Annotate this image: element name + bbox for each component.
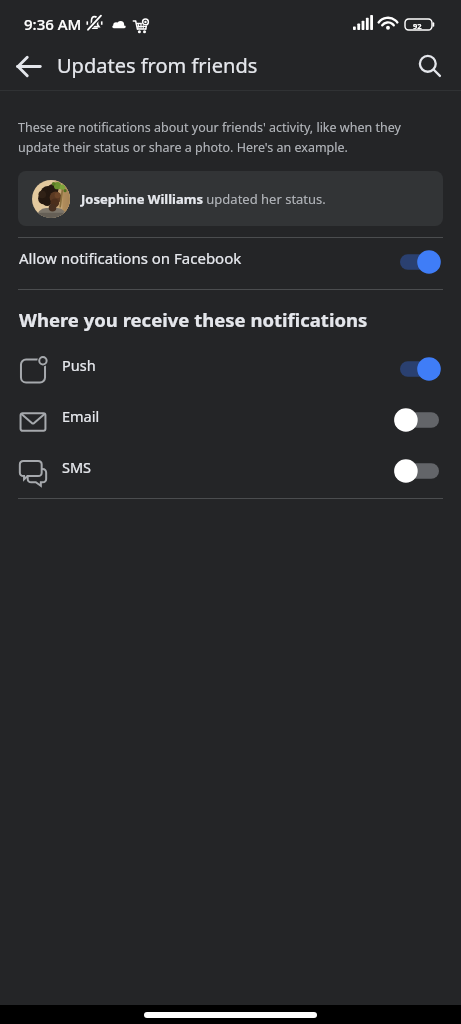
button[interactable]: SMS [0,446,461,497]
staticText: These are notifications about your frien… [18,119,408,156]
staticText: 9:36 AM [24,14,82,34]
staticText: Push [62,355,96,375]
staticText: Email [62,406,100,426]
button[interactable]: Push [0,344,461,395]
button[interactable]: Search [408,44,452,88]
staticText: 92 [413,21,422,31]
button[interactable]: Allow notifications on Facebook [0,237,461,289]
staticText: Updates from friends [57,52,258,79]
staticText: Josephine Williams updated her status. [81,190,326,208]
staticText: SMS [62,457,92,477]
button[interactable]: Email [0,395,461,446]
button[interactable]: Josephine Williams updated her status. [18,171,443,226]
button[interactable]: Back [6,44,50,88]
staticText: Where you receive these notifications [19,307,368,332]
staticText: Allow notifications on Facebook [19,248,242,268]
